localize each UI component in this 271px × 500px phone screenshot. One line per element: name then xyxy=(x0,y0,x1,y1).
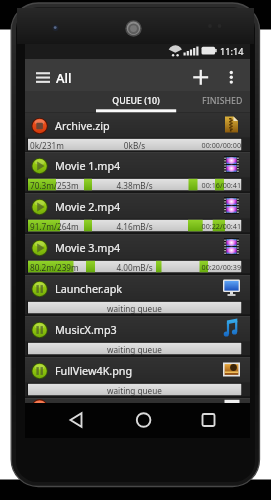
staticText: 4.00mB/s xyxy=(28,262,241,273)
staticText: waiting queue xyxy=(28,344,241,355)
staticText: 4.38mB/s xyxy=(28,180,241,191)
staticText: 91.7m/264m xyxy=(30,221,150,232)
button[interactable]: Error.doc xyxy=(25,398,250,403)
button[interactable] xyxy=(29,59,61,92)
button[interactable] xyxy=(125,403,161,438)
button[interactable]: 0k/231m xyxy=(25,113,250,153)
staticText: Movie 1.mp4 xyxy=(55,158,205,173)
staticText: MusicX.mp3 xyxy=(55,322,205,337)
staticText: waiting queue xyxy=(28,385,241,396)
button[interactable]: FINISHED xyxy=(202,91,250,110)
staticText: FullView4K.png xyxy=(55,363,205,378)
staticText: Movie 2.mp4 xyxy=(55,199,205,214)
staticText: 0k/231m xyxy=(30,140,150,151)
button[interactable]: waiting queue xyxy=(25,357,250,398)
staticText: All xyxy=(56,69,96,87)
staticText: 4.16mB/s xyxy=(28,221,241,232)
staticText: 00:16/00:41 xyxy=(181,180,241,190)
button[interactable]: 80.2m/239m xyxy=(25,234,250,275)
staticText: 0kB/s xyxy=(28,140,241,151)
staticText: 11:14 xyxy=(220,45,271,58)
button[interactable] xyxy=(219,59,245,92)
button[interactable]: QUEUE (10) xyxy=(96,91,176,110)
staticText: 70.3m/253m xyxy=(30,180,150,191)
staticText: Archive.zip xyxy=(55,118,205,133)
button[interactable] xyxy=(58,403,94,438)
button[interactable] xyxy=(190,403,226,438)
staticText: Movie 3.mp4 xyxy=(55,240,205,255)
staticText: waiting queue xyxy=(28,303,241,314)
staticText: QUEUE (10) xyxy=(96,95,176,107)
staticText: 00:00/00:00 xyxy=(181,140,241,150)
staticText: 80.2m/239m xyxy=(30,262,150,273)
staticText: 00:20/00:39 xyxy=(181,262,241,272)
button[interactable]: 91.7m/264m xyxy=(25,193,250,234)
staticText: 00:22/00:41 xyxy=(181,221,241,231)
staticText: FINISHED xyxy=(202,95,250,107)
staticText: Launcher.apk xyxy=(55,281,205,296)
button[interactable]: 70.3m/253m xyxy=(25,152,250,193)
button[interactable] xyxy=(186,59,216,92)
button[interactable]: waiting queue xyxy=(25,275,250,316)
button[interactable]: waiting queue xyxy=(25,316,250,357)
